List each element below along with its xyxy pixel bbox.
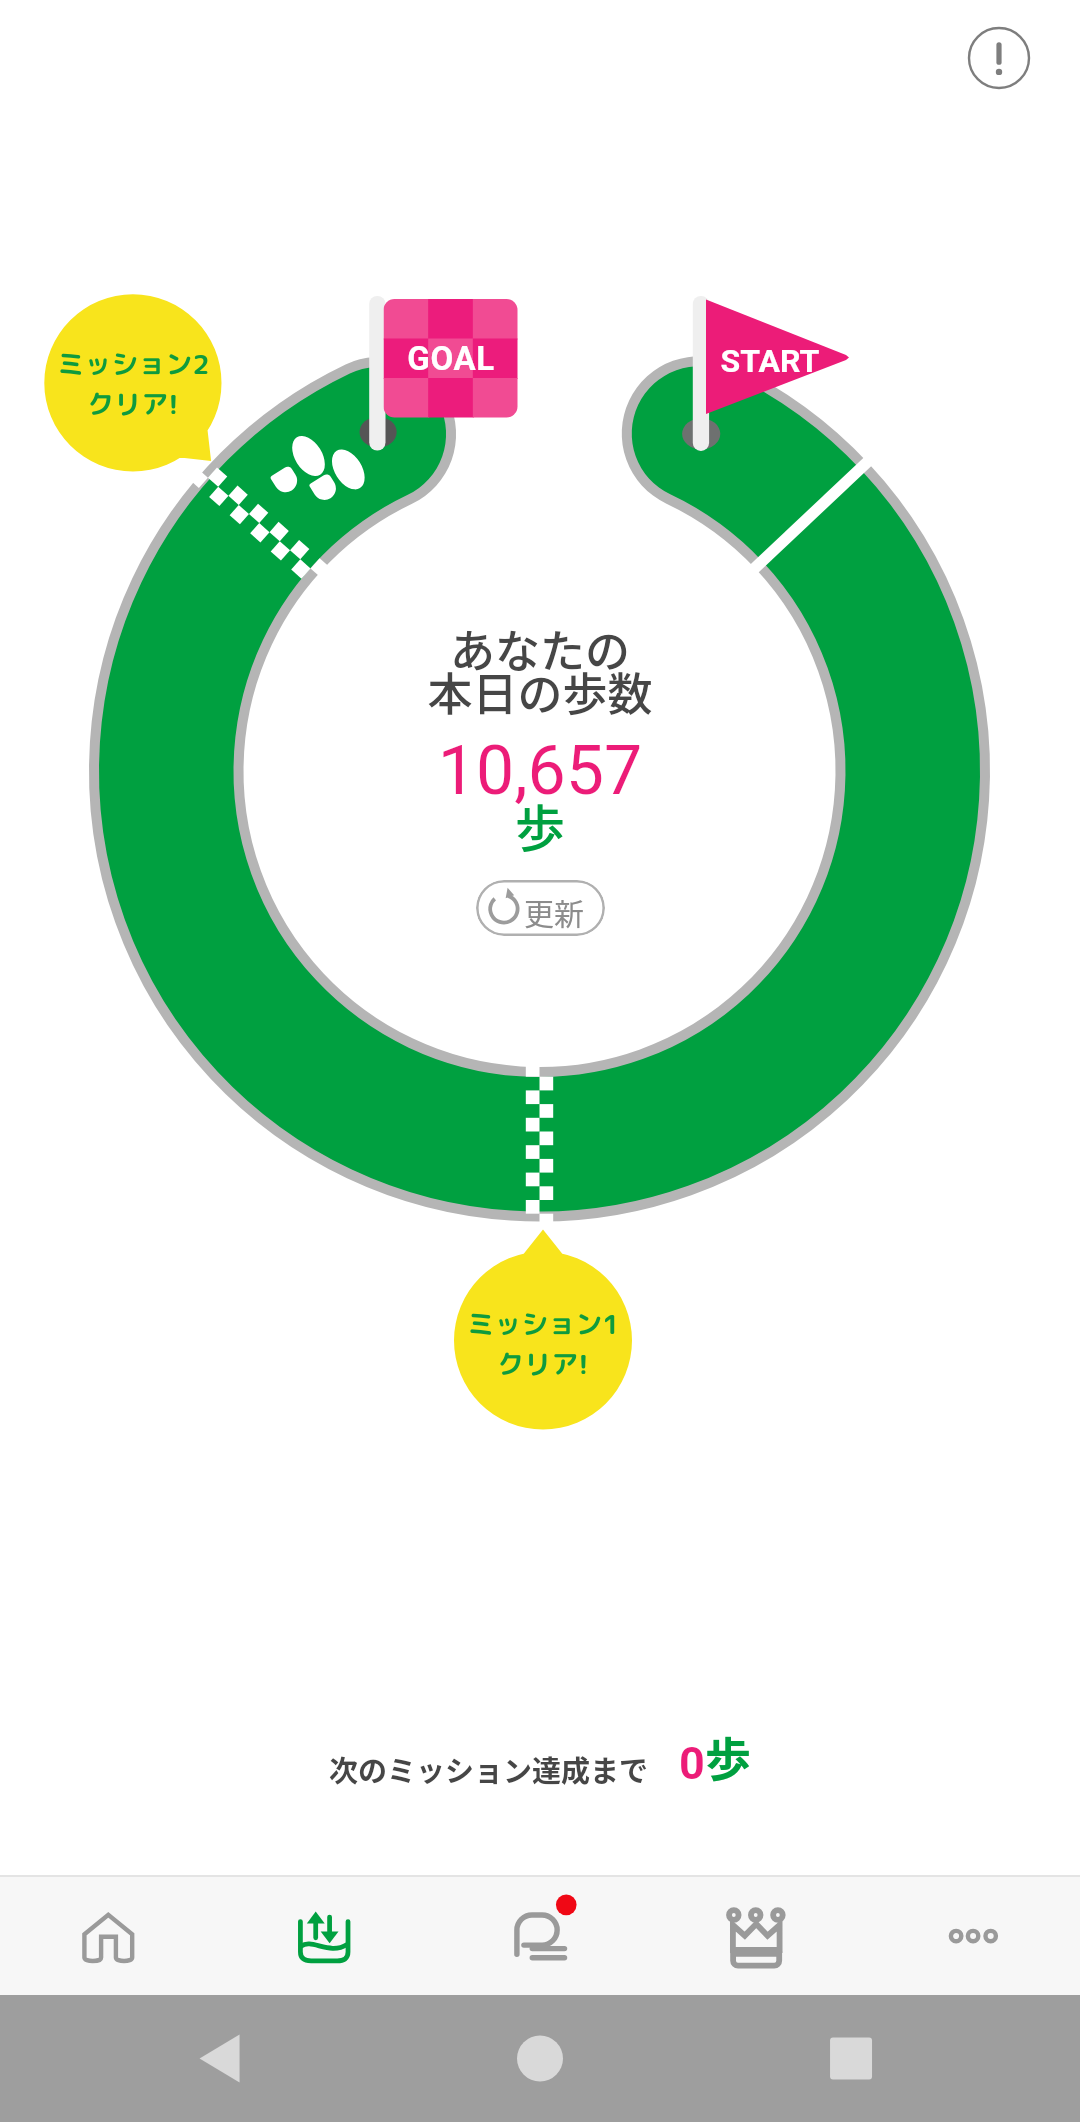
staticText: 0 <box>679 1737 705 1790</box>
staticText: クリア! <box>87 385 179 423</box>
button[interactable]: Steps <box>216 1877 432 1995</box>
button[interactable]: More <box>864 1877 1080 1995</box>
staticText: あなたの <box>0 616 1080 681</box>
staticText: 歩 <box>0 789 1080 861</box>
staticText: 10,657 <box>0 731 1080 811</box>
staticText: 更新 <box>524 890 584 933</box>
staticText: 歩 <box>705 1723 751 1790</box>
button[interactable]: Home <box>0 1877 216 1995</box>
staticText: GOAL <box>391 339 511 378</box>
staticText: ミッション1 <box>467 1305 620 1343</box>
staticText: 本日の歩数 <box>0 659 1080 724</box>
staticText: ミッション2 <box>57 345 210 383</box>
staticText: START <box>710 342 830 380</box>
staticText: 次のミッション達成まで <box>329 1748 649 1790</box>
button[interactable]: Information <box>957 16 1041 100</box>
button[interactable]: Ranking <box>648 1877 864 1995</box>
button[interactable]: 更新 <box>476 880 605 936</box>
staticText: クリア! <box>497 1345 589 1383</box>
button[interactable]: Messages <box>432 1877 648 1995</box>
